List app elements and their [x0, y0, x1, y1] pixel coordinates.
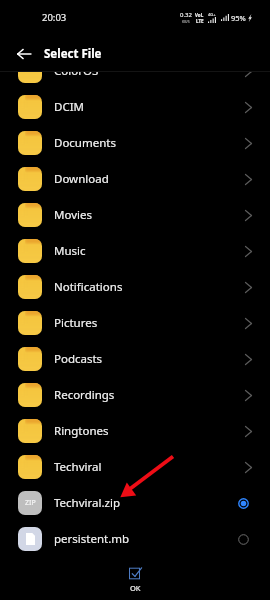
button[interactable]: Music	[18, 233, 252, 269]
button[interactable]: Documents	[18, 125, 252, 161]
button[interactable]: OK	[129, 555, 142, 593]
staticText: ZIP	[25, 498, 36, 508]
button[interactable]: DCIM	[18, 89, 252, 125]
button[interactable]: Podcasts	[18, 341, 252, 377]
staticText: Download	[54, 171, 245, 187]
button[interactable]: Download	[18, 161, 252, 197]
button[interactable]: Pictures	[18, 305, 252, 341]
staticText: 0.32	[180, 11, 192, 19]
staticText: OK	[130, 583, 141, 593]
button[interactable]: Movies	[18, 197, 252, 233]
staticText: 95%	[231, 13, 246, 23]
staticText: Select File	[44, 46, 102, 62]
staticText: Recordings	[54, 387, 245, 403]
button[interactable]: ZIP	[18, 485, 252, 521]
staticText: Movies	[54, 207, 245, 223]
staticText: Podcasts	[54, 351, 245, 367]
staticText: ColorOS	[54, 63, 245, 79]
staticText: Techviral	[54, 459, 245, 475]
staticText: KB/S	[182, 19, 190, 24]
button[interactable]: Techviral	[18, 449, 252, 485]
staticText: DCIM	[54, 99, 245, 115]
staticText: Notifications	[54, 279, 245, 295]
staticText: 4G+	[208, 12, 216, 17]
button[interactable]: Notifications	[18, 269, 252, 305]
button[interactable]: ColorOS	[18, 53, 252, 89]
staticText: Music	[54, 243, 245, 259]
staticText: Techviral.zip	[54, 495, 241, 511]
staticText: persistent.mb	[54, 531, 241, 547]
staticText: 20:03	[42, 11, 67, 24]
staticText: Ringtones	[54, 423, 245, 439]
button[interactable]: persistent.mb	[18, 521, 252, 557]
staticText: VoL	[195, 12, 204, 18]
button[interactable]: Recordings	[18, 377, 252, 413]
staticText: Pictures	[54, 315, 245, 331]
button[interactable]: Back	[10, 40, 38, 68]
button[interactable]: Ringtones	[18, 413, 252, 449]
staticText: LTE	[196, 18, 204, 24]
staticText: Documents	[54, 135, 245, 151]
